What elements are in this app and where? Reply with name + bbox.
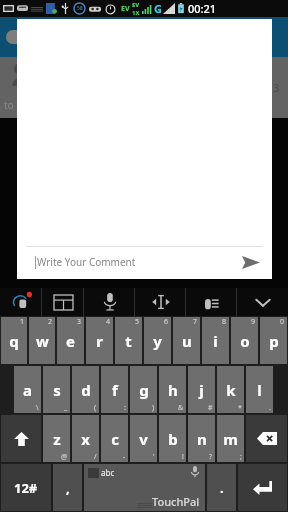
staticText: x [81,429,90,449]
staticText: _ [64,403,68,413]
button[interactable]: Shift [1,415,41,462]
staticText: ' [153,452,155,462]
button[interactable]: a [14,366,41,413]
staticText: i [213,331,218,351]
button[interactable]: f [101,366,128,413]
button[interactable]: 12# [1,464,51,511]
button[interactable]: n [188,415,215,462]
staticText: : [124,403,126,413]
button[interactable]: Backspace [246,415,287,462]
staticText: 1X [132,9,140,17]
staticText: # [208,403,213,413]
button[interactable]: t [115,317,142,364]
staticText: e [66,331,75,351]
button[interactable]: Enter [238,464,287,511]
button[interactable]: Handwriting [0,288,42,316]
staticText: to [4,98,14,112]
staticText: o [240,331,250,351]
button[interactable]: p [260,317,287,364]
button[interactable]: z [43,415,70,462]
staticText: y [153,331,162,351]
button[interactable]: v [130,415,157,462]
staticText: s [53,380,61,400]
button[interactable]: Send comment [234,247,268,277]
staticText: m [223,429,238,449]
staticText: 1 [20,317,25,327]
button[interactable]: Gestures [186,288,237,316]
button[interactable]: k [217,366,244,413]
button[interactable]: l [246,366,273,413]
button[interactable]: w [29,317,55,364]
staticText: 00:21 [188,1,217,16]
staticText: 9 [251,317,256,327]
staticText: TouchPal [152,494,200,509]
staticText: 3 [273,80,280,95]
staticText: n [197,429,207,449]
staticText: EV [132,1,140,9]
button[interactable]: x [72,415,99,462]
staticText: . [269,403,271,413]
staticText: 6 [164,317,169,327]
button[interactable]: d [72,366,99,413]
staticText: v [139,429,148,449]
button[interactable]: r [86,317,113,364]
staticText: @ [61,452,68,462]
button[interactable]: s [43,366,70,413]
staticText: b [168,429,178,449]
staticText: q [9,331,19,351]
staticText: 5 [135,317,140,327]
button[interactable]: Voice input [84,288,135,316]
staticText: . [220,479,224,497]
staticText: w [36,331,49,351]
staticText: abc [101,467,115,478]
staticText: 12# [14,479,38,497]
staticText: / [94,452,97,462]
staticText: ; [240,452,242,462]
button[interactable]: . [207,464,236,511]
staticText: d [81,380,91,400]
button[interactable]: u [173,317,200,364]
staticText: j [199,380,204,400]
staticText: ! [182,452,184,462]
button[interactable]: q [1,317,27,364]
staticText: ( [94,403,97,413]
staticText: c [111,429,119,449]
staticText: 2 [48,317,53,327]
staticText: EV [121,4,130,14]
staticText: k [226,380,236,400]
button[interactable]: b [159,415,186,462]
staticText: r [96,331,103,351]
button[interactable]: Hide keyboard [237,288,288,316]
button[interactable]: o [231,317,258,364]
button[interactable]: m [217,415,244,462]
button[interactable]: h [159,366,186,413]
button[interactable]: e [57,317,84,364]
button[interactable]: Write Your Comment [17,247,272,277]
staticText: Write Your Comment [37,255,234,269]
staticText: ) [152,403,155,413]
button[interactable]: c [101,415,128,462]
button[interactable]: i [202,317,229,364]
staticText: & [178,403,184,413]
button[interactable]: j [188,366,215,413]
staticText: z [53,429,61,449]
staticText: 0 [280,317,285,327]
staticText: a [23,380,32,400]
staticText: l [257,380,262,400]
staticText: 58 [77,5,83,12]
staticText: , [66,479,70,497]
button[interactable]: Space [84,464,205,511]
staticText: f [112,380,118,400]
button[interactable]: Language EN [42,288,84,316]
staticText: \ [36,403,39,413]
staticText: 7 [193,317,198,327]
button[interactable]: Cursor control [135,288,186,316]
button[interactable]: g [130,366,157,413]
button[interactable]: , [53,464,82,511]
staticText: ? [209,452,213,462]
staticText: - [123,452,126,462]
staticText: 8 [222,317,227,327]
staticText: u [182,331,192,351]
button[interactable]: y [144,317,171,364]
staticText: g [139,380,149,400]
